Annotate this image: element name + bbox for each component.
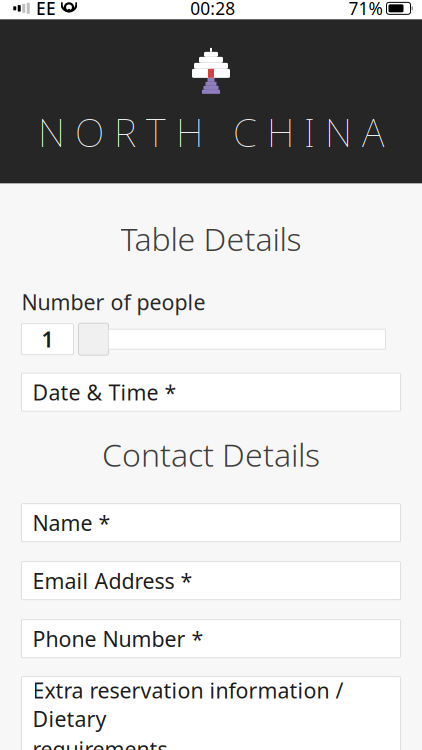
staticText: Email Address *	[32, 566, 192, 595]
button[interactable]: Extra reservation information / Dietary	[21, 677, 400, 750]
staticText: 1	[41, 325, 53, 353]
staticText: Date & Time *	[32, 378, 176, 406]
button[interactable]: Phone Number *	[21, 620, 400, 658]
staticText: Number of people	[21, 288, 205, 316]
staticText: Table Details	[120, 217, 301, 260]
button[interactable]: Email Address *	[21, 562, 400, 600]
staticText: Extra reservation information / Dietary	[32, 676, 343, 733]
staticText: 71%	[348, 0, 382, 20]
staticText: Contact Details	[102, 433, 320, 476]
button[interactable]: Number of people slider	[78, 323, 385, 355]
staticText: N O R T H C H I N A	[38, 106, 384, 158]
staticText: Phone Number *	[32, 624, 203, 653]
button[interactable]: Date & Time *	[21, 373, 400, 411]
button[interactable]: 1	[21, 324, 73, 355]
staticText: requirements	[32, 735, 167, 750]
staticText: Name *	[32, 508, 110, 537]
button[interactable]: Name *	[21, 504, 400, 542]
staticText: EE	[36, 0, 56, 20]
staticText: 00:28	[190, 0, 235, 20]
